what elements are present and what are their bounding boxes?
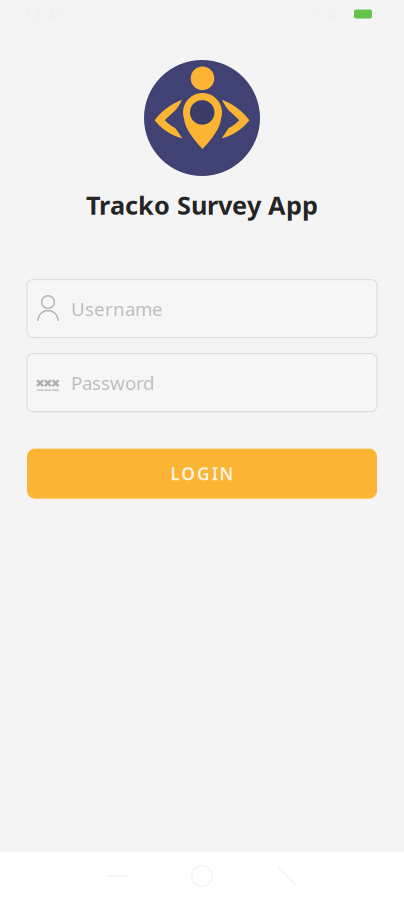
button[interactable]: LOGIN [0, 449, 404, 499]
staticText: Username [71, 296, 163, 321]
staticText: Tracko Survey App [86, 188, 318, 222]
staticText: LOGIN [170, 462, 234, 485]
staticText: Password [71, 370, 154, 395]
